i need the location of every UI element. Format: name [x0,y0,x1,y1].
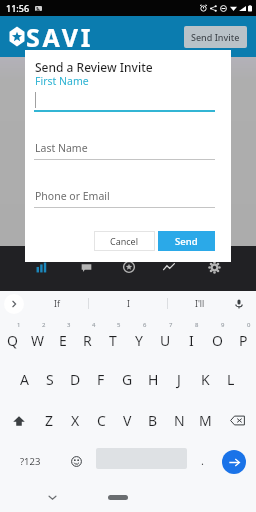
staticText: 8 [195,321,199,329]
button[interactable]: Messages [70,251,102,283]
staticText: Q [7,331,18,350]
button[interactable]: M [192,400,218,441]
button[interactable]: E [50,316,75,358]
staticText: Send a Review Invite [35,59,153,75]
button[interactable]: I'll [169,291,231,316]
staticText: 6 [143,321,147,329]
button[interactable]: P [230,316,256,358]
staticText: H [148,370,159,389]
staticText: Cancel [110,235,139,247]
staticText: 3 [67,321,71,329]
staticText: M [199,411,212,430]
button[interactable]: J [166,358,192,400]
button[interactable]: Dashboard [25,251,57,283]
staticText: J [177,370,181,389]
staticText: Send [175,235,198,248]
button[interactable]: If [26,291,88,316]
button[interactable]: Enter [215,441,253,482]
staticText: O [212,331,223,350]
button[interactable]: N [166,400,192,441]
button[interactable]: O [204,316,230,358]
button[interactable]: Trends [153,251,185,283]
staticText: K [201,370,210,389]
staticText: D [70,370,81,389]
button[interactable]: Voice input [222,291,256,316]
staticText: I [189,331,194,350]
staticText: P [239,331,248,350]
staticText: Z [45,411,54,430]
button[interactable]: Send Invite [184,26,247,48]
button[interactable]: R [75,316,100,358]
button[interactable]: Expand toolbar [4,294,24,314]
button[interactable]: Settings [198,251,230,283]
button[interactable]: V [114,400,140,441]
button[interactable]: G [114,358,140,400]
staticText: Last Name [35,141,88,155]
staticText: L [227,370,235,389]
staticText: 9 [221,321,225,329]
staticText: W [31,331,45,350]
staticText: S [46,370,54,389]
button[interactable]: Reviews [113,251,145,283]
staticText: 5 [117,321,121,329]
button[interactable]: Home [108,495,128,500]
button[interactable]: U [152,316,178,358]
button[interactable]: X [62,400,88,441]
button[interactable]: K [192,358,218,400]
staticText: SAVI [26,20,94,54]
staticText: B [148,411,158,430]
button[interactable]: Emoji [58,441,94,482]
button[interactable]: I [178,316,204,358]
button[interactable]: W [25,316,50,358]
button[interactable]: Backspace [218,400,256,441]
staticText: T [109,331,117,350]
button[interactable]: . [190,441,214,482]
button[interactable]: I [90,291,166,316]
button[interactable]: Back [44,489,60,505]
staticText: 7 [169,321,173,329]
button[interactable]: C [88,400,114,441]
staticText: I'll [195,298,205,310]
button[interactable]: L [218,358,244,400]
staticText: X [71,411,80,430]
staticText: First Name [35,74,89,88]
button[interactable]: D [62,358,88,400]
button[interactable]: Q [0,316,25,358]
button[interactable]: F [88,358,114,400]
staticText: N [174,411,185,430]
button[interactable]: S [37,358,62,400]
staticText: E [59,331,67,350]
button[interactable]: Z [37,400,62,441]
button[interactable]: H [140,358,166,400]
staticText: G [122,370,133,389]
staticText: R [83,331,92,350]
staticText: 1 [17,321,21,329]
staticText: F [97,370,105,389]
button[interactable]: Cancel [94,231,155,251]
staticText: A [20,370,29,389]
staticText: . [201,453,204,468]
button[interactable]: ?123 [10,441,50,482]
button[interactable]: Shift [0,400,37,441]
button[interactable]: T [100,316,126,358]
staticText: C [97,411,106,430]
staticText: ?123 [20,455,41,468]
button[interactable]: A [12,358,37,400]
staticText: U [160,331,171,350]
staticText: Phone or Email [35,189,110,203]
staticText: If [54,298,60,310]
staticText: 4 [92,321,96,329]
button[interactable]: Send [158,231,215,251]
button[interactable]: Y [126,316,152,358]
staticText: 2 [42,321,46,329]
staticText: V [123,411,132,430]
button[interactable]: B [140,400,166,441]
staticText: 0 [247,321,251,329]
staticText: Send Invite [191,31,240,43]
staticText: Y [135,331,143,350]
staticText: 11:56 [6,2,30,14]
staticText: I [127,298,130,310]
